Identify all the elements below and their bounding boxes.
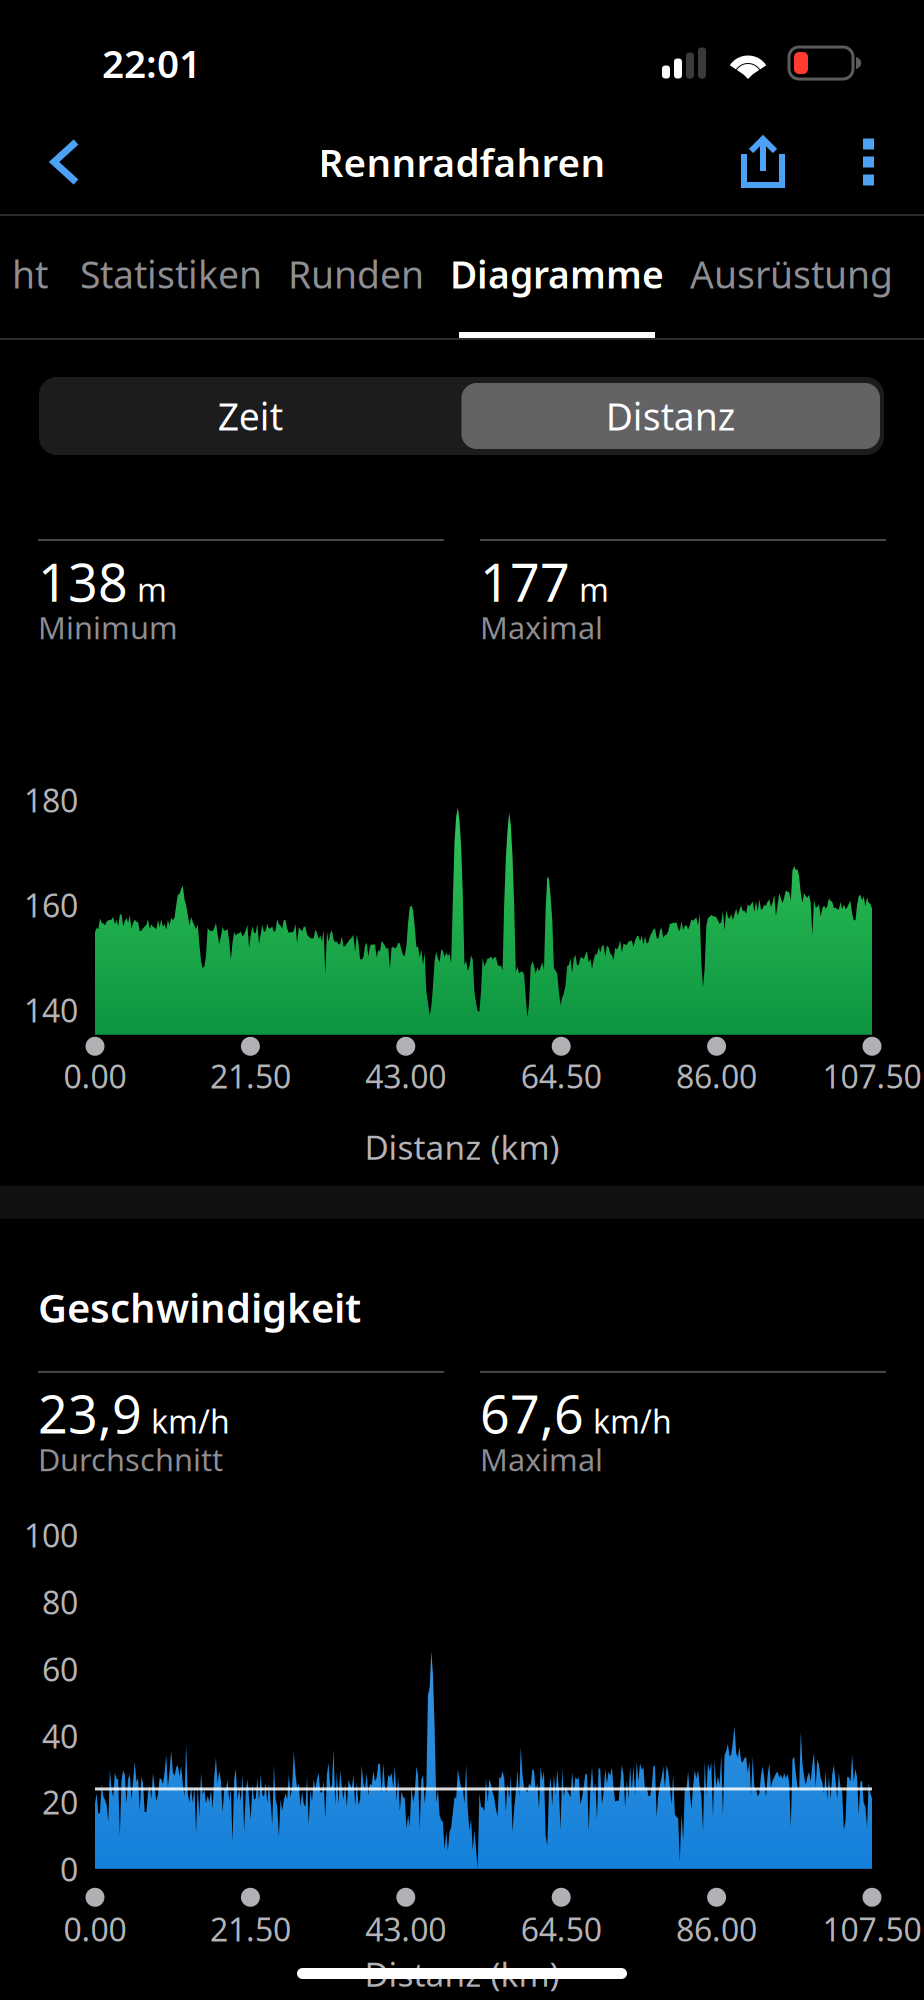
staticText: 160 [24, 884, 78, 926]
staticText: Distanz (km) [364, 1125, 559, 1169]
staticText: 21.50 [210, 1908, 291, 1950]
button[interactable]: Runden [288, 216, 424, 338]
staticText: 80 [42, 1581, 78, 1623]
staticText: 100 [24, 1514, 78, 1556]
staticText: 180 [24, 779, 78, 821]
button[interactable]: Zeit [39, 381, 461, 451]
staticText: 43.00 [365, 1908, 446, 1950]
button[interactable]: Diagramme [450, 216, 664, 338]
button[interactable]: Statistiken [80, 216, 262, 338]
staticText: ht [12, 249, 48, 299]
staticText: 0.00 [63, 1055, 126, 1097]
staticText: Minimum [38, 607, 178, 648]
button[interactable]: ht [12, 216, 48, 338]
button[interactable]: Back [22, 110, 108, 214]
button[interactable]: Ausrüstung [690, 216, 893, 338]
button[interactable]: More options [826, 110, 911, 214]
staticText: 138 [38, 547, 128, 616]
staticText: Maximal [480, 607, 603, 648]
staticText: 64.50 [521, 1908, 602, 1950]
staticText: 23,9 [38, 1379, 142, 1448]
staticText: km/h [593, 1400, 672, 1442]
staticText: 64.50 [521, 1055, 602, 1097]
staticText: m [137, 568, 167, 610]
staticText: Ausrüstung [690, 249, 893, 299]
staticText: 43.00 [365, 1055, 446, 1097]
button[interactable]: Share [700, 110, 826, 214]
staticText: 67,6 [480, 1379, 584, 1448]
staticText: Rennradfahren [318, 136, 605, 188]
staticText: 177 [480, 547, 570, 616]
button[interactable]: Distanz [461, 383, 884, 449]
staticText: Zeit [218, 391, 283, 441]
staticText: 107.50 [822, 1908, 921, 1950]
staticText: Durchschnitt [38, 1439, 223, 1480]
staticText: km/h [151, 1400, 230, 1442]
staticText: 40 [42, 1715, 78, 1757]
staticText: 60 [42, 1648, 78, 1690]
staticText: 21.50 [210, 1055, 291, 1097]
staticText: 20 [42, 1781, 78, 1823]
staticText: Distanz [606, 391, 736, 441]
staticText: 107.50 [822, 1055, 921, 1097]
staticText: 22:01 [102, 37, 201, 89]
staticText: 86.00 [676, 1055, 757, 1097]
staticText: Diagramme [450, 249, 664, 299]
staticText: 86.00 [676, 1908, 757, 1950]
staticText: Distanz (km) [364, 1952, 559, 1996]
staticText: Maximal [480, 1439, 603, 1480]
staticText: Statistiken [80, 249, 262, 299]
staticText: Runden [288, 249, 424, 299]
staticText: 0 [60, 1848, 78, 1890]
staticText: Geschwindigkeit [38, 1281, 361, 1334]
staticText: m [579, 568, 609, 610]
staticText: 0.00 [63, 1908, 126, 1950]
staticText: 140 [24, 989, 78, 1031]
